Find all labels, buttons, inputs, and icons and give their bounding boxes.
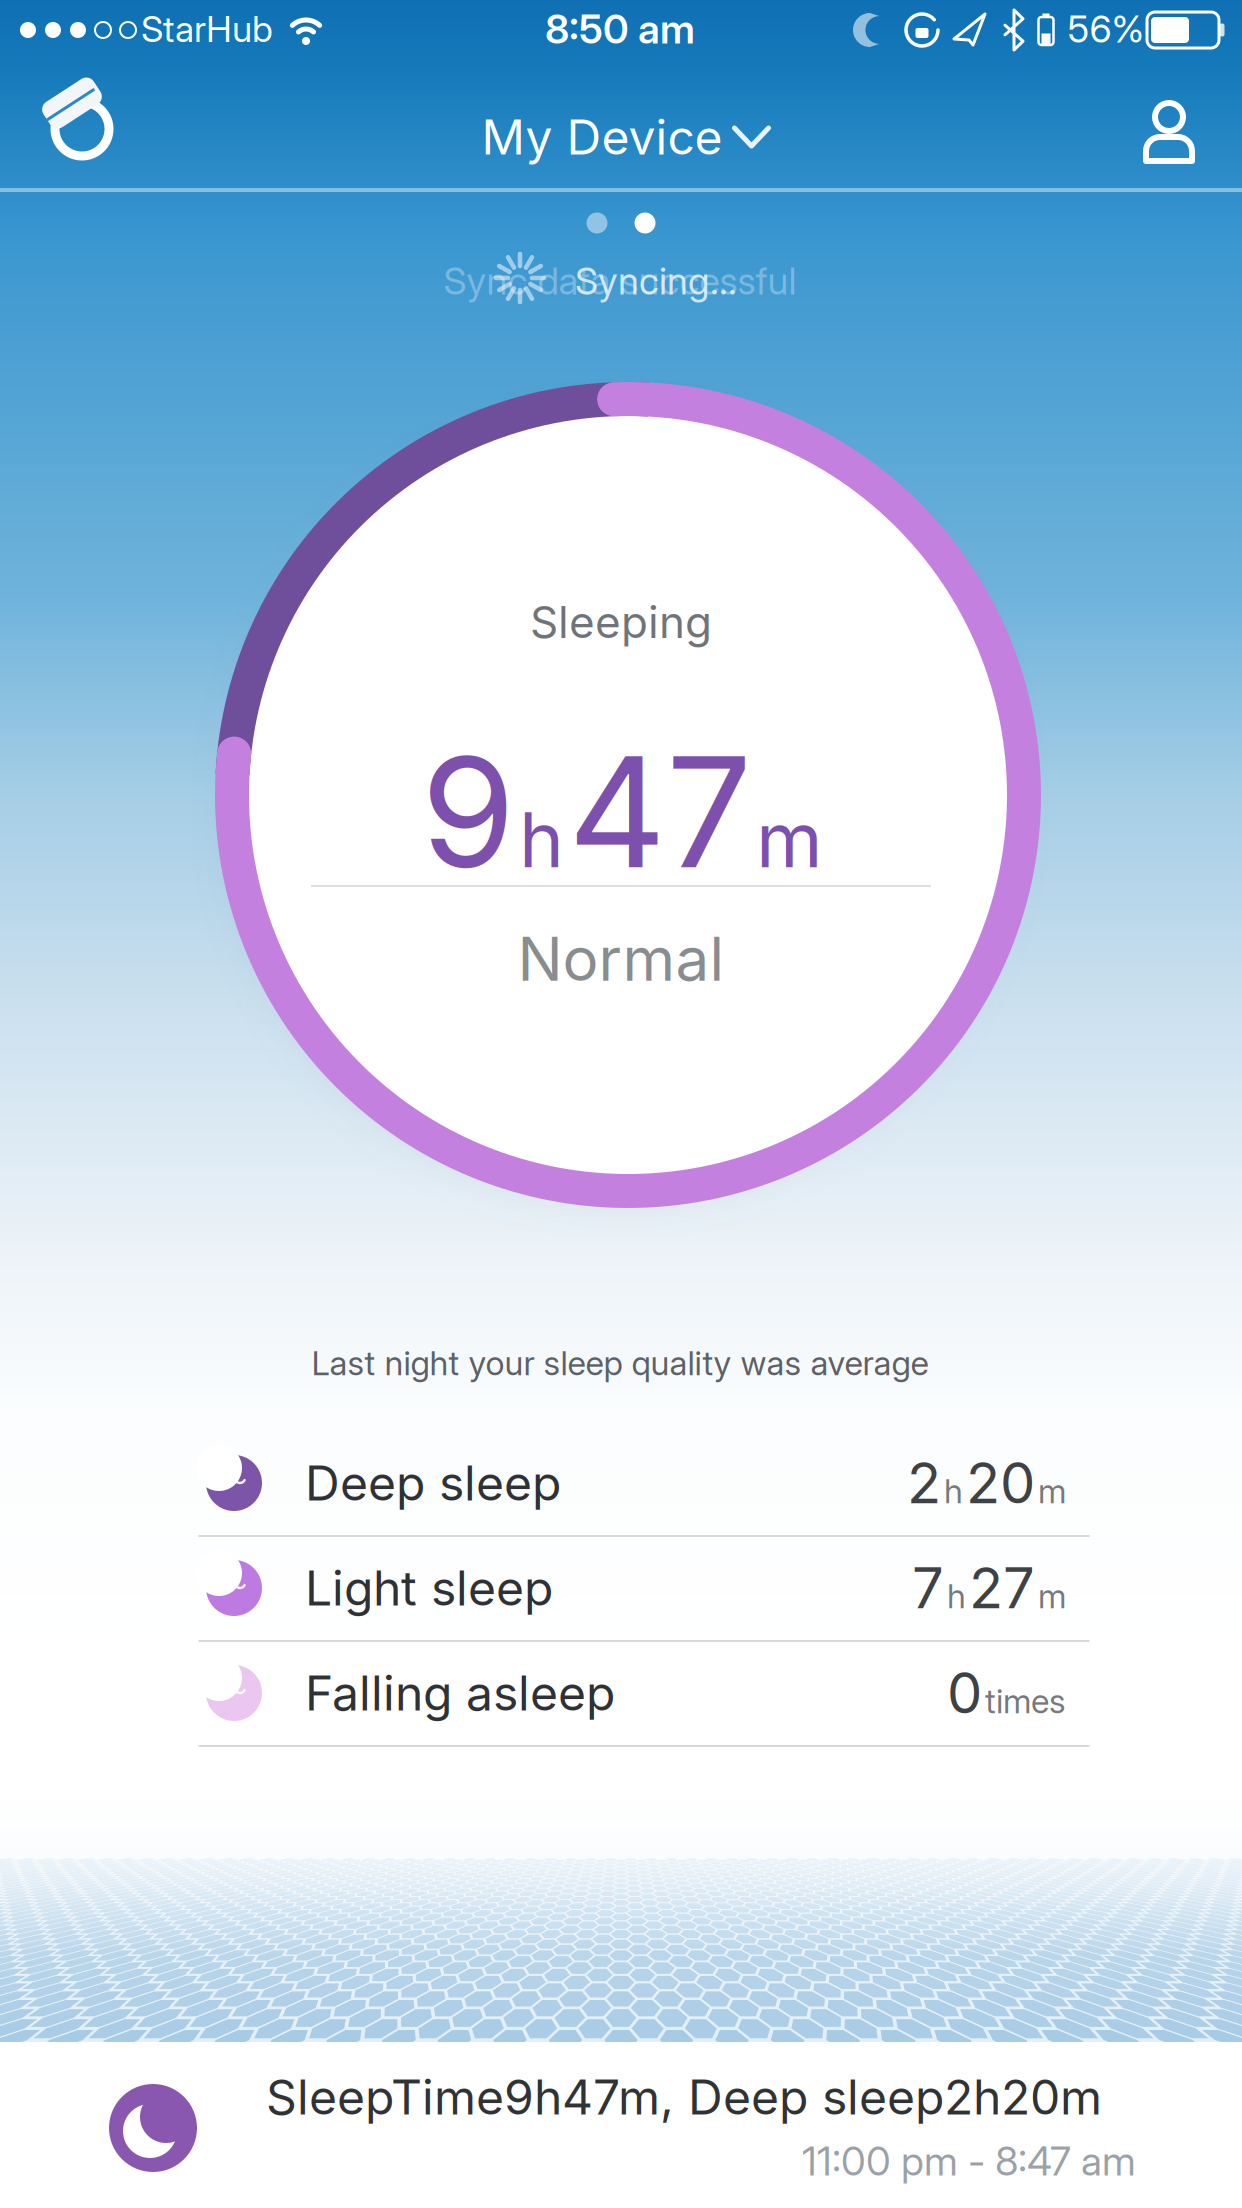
- staticText: Sync data successful: [443, 259, 796, 303]
- staticText: h: [519, 795, 564, 884]
- staticText: m: [1038, 1472, 1066, 1511]
- staticText: Normal: [517, 924, 724, 994]
- staticText: Sleeping: [530, 596, 712, 648]
- staticText: 2: [907, 1450, 941, 1516]
- staticText: SleepTime9h47m, Deep sleep2h20m: [266, 2069, 1102, 2125]
- staticText: Syncing...: [575, 259, 737, 303]
- staticText: Light sleep: [305, 1560, 553, 1616]
- button[interactable]: SleepTime9h47m, Deep sleep2h20m: [0, 0, 1242, 2208]
- staticText: Deep sleep: [305, 1455, 561, 1511]
- staticText: 7: [912, 1555, 944, 1621]
- staticText: h: [947, 1577, 966, 1616]
- staticText: 20: [966, 1450, 1035, 1516]
- button[interactable]: Deep sleep: [0, 0, 1242, 2208]
- staticText: h: [944, 1472, 963, 1511]
- button[interactable]: Light sleep: [0, 0, 1242, 2208]
- staticText: times: [985, 1682, 1066, 1721]
- staticText: 27: [969, 1555, 1035, 1621]
- staticText: 0: [947, 1660, 982, 1726]
- staticText: Falling asleep: [305, 1665, 615, 1721]
- staticText: 56%: [1067, 7, 1144, 51]
- button[interactable]: My Device: [481, 109, 768, 165]
- staticText: 8:50 am: [545, 5, 695, 53]
- staticText: My Device: [481, 109, 722, 165]
- button[interactable]: [1143, 103, 1195, 161]
- staticText: 11:00 pm - 8:47 am: [802, 2137, 1136, 2185]
- staticText: 47: [568, 722, 752, 902]
- staticText: StarHub: [141, 8, 273, 50]
- staticText: Last night your sleep quality was averag…: [311, 1343, 928, 1383]
- button[interactable]: [20, 63, 140, 193]
- staticText: m: [1038, 1577, 1066, 1616]
- staticText: 9: [421, 722, 515, 902]
- button[interactable]: Falling asleep: [0, 0, 1242, 2208]
- staticText: m: [756, 795, 823, 884]
